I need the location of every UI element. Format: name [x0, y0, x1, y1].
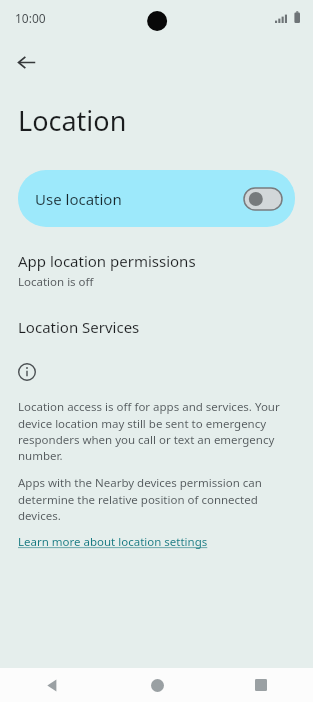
button[interactable]: Navigate up	[4, 40, 48, 84]
staticText: Location access is off for apps and serv…	[18, 399, 299, 463]
staticText: Learn more about location settings	[18, 534, 208, 550]
button[interactable]: Use location	[18, 170, 295, 227]
button[interactable]: Recent apps	[209, 668, 313, 702]
staticText: Location	[18, 102, 127, 139]
staticText: Location is off	[18, 274, 94, 290]
button[interactable]: Back	[0, 668, 105, 702]
staticText: Location Services	[18, 317, 140, 337]
staticText: App location permissions	[18, 251, 196, 271]
staticText: Apps with the Nearby devices permission …	[18, 475, 299, 523]
staticText: Use location	[35, 189, 244, 209]
button[interactable]: App location permissions	[0, 249, 313, 292]
button[interactable]: Learn more about location settings	[18, 534, 208, 550]
button[interactable]: Home	[105, 668, 209, 702]
button[interactable]: Location Services	[0, 315, 313, 339]
staticText: 10:00	[15, 10, 46, 26]
